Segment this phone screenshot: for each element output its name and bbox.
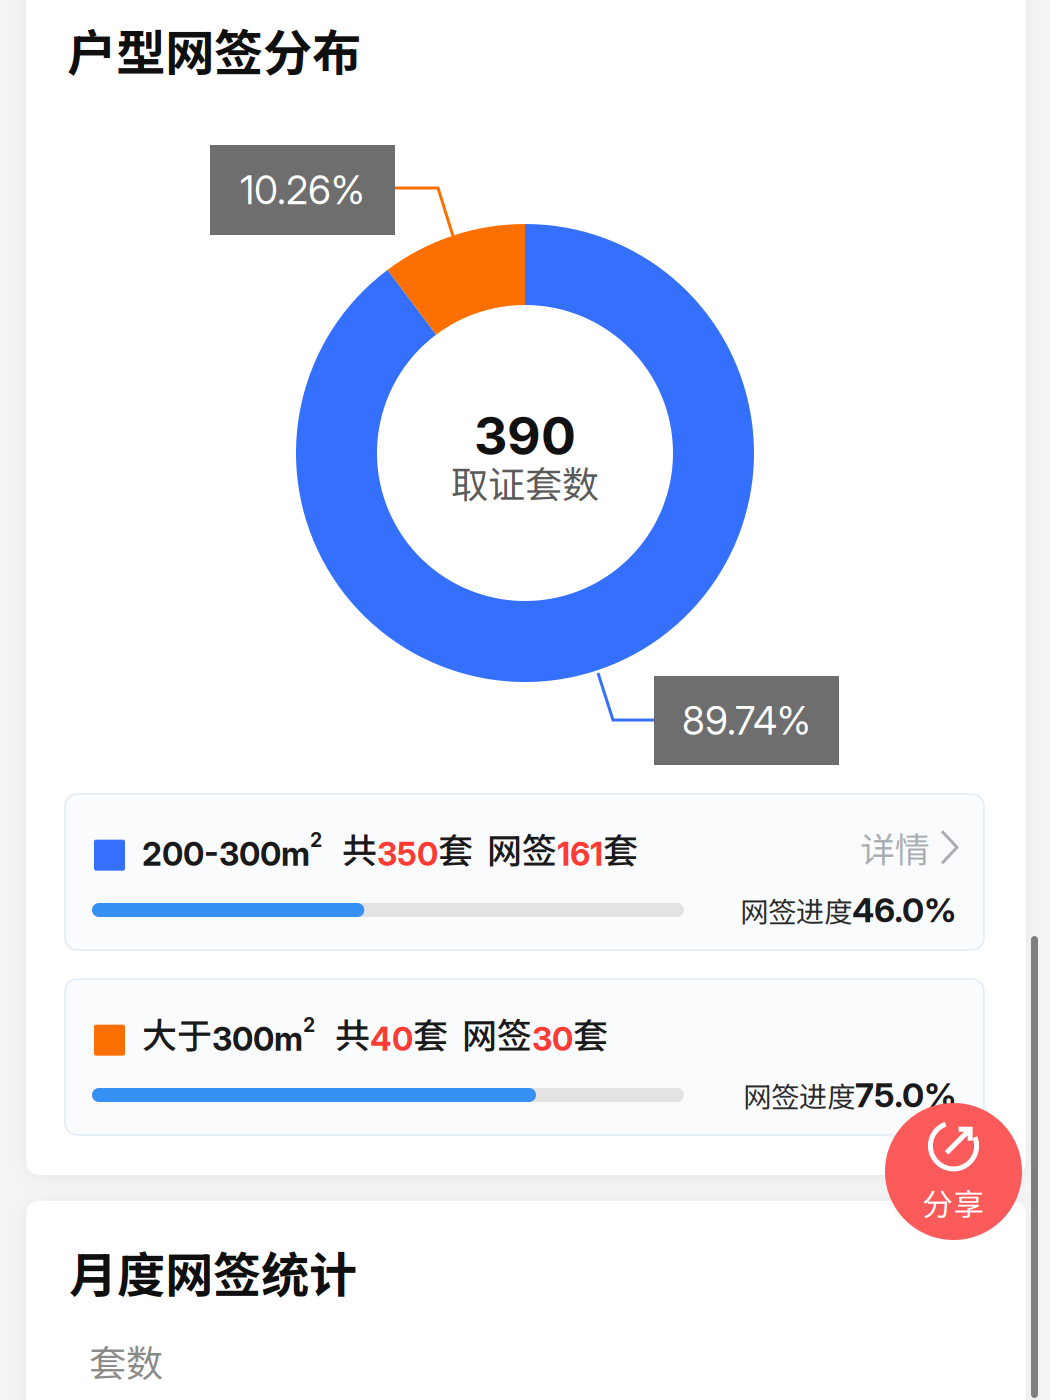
staticText: 套数: [89, 1334, 163, 1388]
button[interactable]: 分享: [885, 1103, 1022, 1240]
staticText: 300: [212, 1019, 274, 1059]
staticText: m: [274, 1019, 303, 1059]
staticText: 350: [377, 834, 438, 874]
staticText: 89.74%: [682, 697, 811, 744]
staticText: 网签进度: [743, 1074, 855, 1115]
staticText: 套: [438, 823, 473, 874]
staticText: 户型网签分布: [67, 14, 361, 85]
staticText: 共: [335, 1008, 370, 1059]
staticText: 2: [303, 1013, 315, 1037]
button[interactable]: 大于: [65, 979, 984, 1135]
staticText: 40: [370, 1019, 413, 1059]
staticText: 30: [532, 1019, 573, 1059]
staticText: m: [281, 834, 310, 874]
staticText: 46.0%: [852, 890, 957, 930]
staticText: 套: [413, 1008, 448, 1059]
staticText: 390: [474, 405, 576, 467]
staticText: 网签: [462, 1008, 532, 1059]
staticText: 大于: [142, 1008, 212, 1059]
staticText: 200-300: [142, 834, 281, 874]
staticText: 共: [342, 823, 377, 874]
staticText: 2: [310, 828, 322, 852]
staticText: 75.0%: [855, 1075, 957, 1115]
staticText: 套: [573, 1008, 608, 1059]
staticText: 分享: [922, 1180, 984, 1225]
button[interactable]: 200-300: [65, 794, 984, 950]
staticText: 详情: [860, 822, 930, 873]
staticText: 取证套数: [451, 455, 599, 509]
staticText: 网签进度: [740, 889, 852, 930]
staticText: 月度网签统计: [69, 1237, 357, 1307]
button[interactable]: 详情: [848, 812, 969, 883]
staticText: 161: [557, 834, 603, 874]
staticText: 网签: [487, 823, 557, 874]
staticText: 套: [603, 823, 638, 874]
staticText: 10.26%: [240, 166, 365, 213]
